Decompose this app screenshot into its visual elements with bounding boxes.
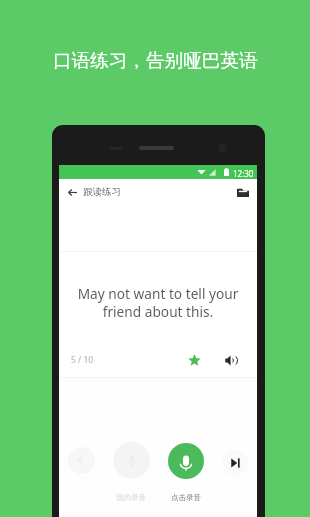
button[interactable]: Back	[59, 179, 85, 205]
button[interactable]: Record	[168, 443, 204, 479]
staticText: 点击录音	[171, 493, 201, 502]
staticText: 口语练习，告别哑巴英语	[53, 49, 258, 72]
button[interactable]: Favorite	[183, 349, 205, 371]
button[interactable]: Next sentence	[222, 450, 248, 476]
staticText: 我的录音	[116, 493, 146, 502]
button[interactable]: My recording	[113, 442, 150, 479]
button[interactable]: Slow playback	[68, 447, 95, 474]
staticText: 5 / 10	[71, 354, 94, 366]
button[interactable]: Play audio	[220, 349, 242, 371]
staticText: May not want to tell your friend about t…	[65, 284, 251, 321]
staticText: 跟读练习	[83, 186, 121, 198]
staticText: 12:30	[233, 168, 254, 179]
button[interactable]: Lesson list	[231, 180, 255, 204]
